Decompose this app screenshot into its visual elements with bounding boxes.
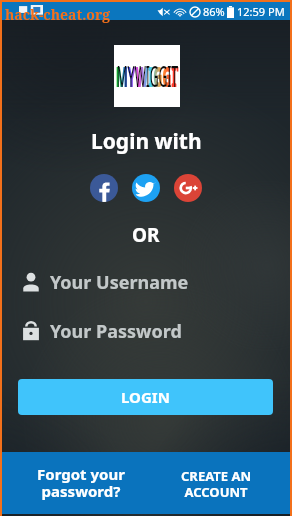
button[interactable]: CREATE AN ACCOUNT (159, 452, 290, 514)
button[interactable]: Sign in with Twitter (132, 174, 160, 202)
button[interactable]: LOGIN (18, 379, 273, 415)
button[interactable]: Sign in with Google Plus (174, 174, 202, 202)
staticText: LOGIN (121, 387, 170, 407)
staticText: Your Password (50, 319, 182, 344)
staticText: 86% (203, 4, 225, 19)
staticText: MYWIGGIT (117, 56, 178, 96)
button[interactable]: Your Password (22, 317, 290, 345)
button[interactable]: Forgot your password? (2, 452, 159, 514)
staticText: Login with (91, 127, 202, 156)
staticText: 12:59 PM (237, 4, 285, 19)
staticText: OR (132, 222, 160, 248)
staticText: hack-cheat.org (5, 5, 111, 24)
button[interactable]: Sign in with Facebook (90, 174, 118, 202)
button[interactable]: Your Username (22, 268, 290, 296)
staticText: MYWIGGIT (116, 56, 178, 96)
staticText: CREATE AN ACCOUNT (181, 467, 251, 500)
staticText: Forgot your password? (37, 464, 125, 502)
staticText: Your Username (50, 270, 189, 295)
